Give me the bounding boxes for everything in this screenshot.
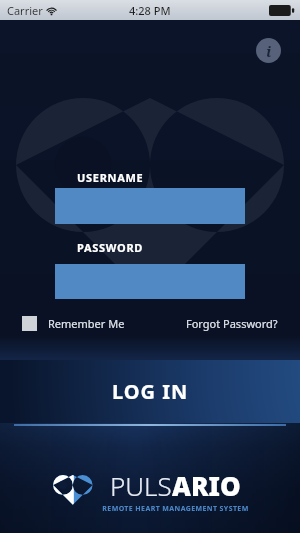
button[interactable]: Information bbox=[256, 38, 281, 63]
button[interactable]: Remember Me bbox=[22, 316, 125, 331]
staticText: Remember Me bbox=[48, 316, 125, 331]
button[interactable]: LOG IN bbox=[0, 360, 300, 423]
staticText: USERNAME bbox=[77, 170, 144, 185]
staticText: LOG IN bbox=[112, 378, 189, 405]
staticText: Carrier bbox=[7, 3, 43, 18]
staticText: ARIO bbox=[172, 468, 241, 503]
staticText: PASSWORD bbox=[77, 240, 144, 255]
staticText: i bbox=[266, 41, 272, 61]
button[interactable]: Forgot Password? bbox=[186, 316, 278, 331]
staticText: 4:28 PM bbox=[129, 3, 171, 18]
staticText: PULS bbox=[110, 468, 172, 503]
staticText: REMOTE HEART MANAGEMENT SYSTEM bbox=[102, 504, 249, 514]
